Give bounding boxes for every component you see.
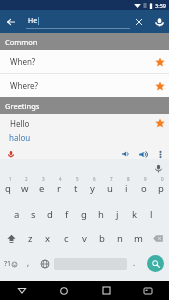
button[interactable]: 5	[67, 177, 84, 202]
button[interactable]: f	[58, 202, 75, 226]
button[interactable]: When?	[0, 50, 169, 73]
staticText: .	[133, 257, 136, 268]
button[interactable]: m	[129, 226, 147, 251]
staticText: i	[125, 182, 128, 195]
button[interactable]: d	[41, 202, 58, 226]
button[interactable]: Voice input	[149, 10, 169, 33]
button[interactable]: Clear	[129, 10, 149, 33]
button[interactable]: k	[126, 202, 143, 226]
button[interactable]: h	[92, 202, 109, 226]
staticText: 9	[144, 176, 147, 182]
staticText: f	[65, 208, 69, 221]
button[interactable]: Recent apps	[85, 281, 127, 300]
staticText: 0	[161, 176, 164, 182]
button[interactable]: Play	[135, 146, 152, 162]
staticText: g	[81, 208, 87, 221]
button[interactable]: l	[143, 202, 160, 226]
button[interactable]: a	[9, 202, 25, 226]
button[interactable]: Change language	[36, 251, 54, 276]
button[interactable]: Symbols	[0, 251, 21, 276]
button[interactable]: Play slowly	[118, 146, 135, 162]
button[interactable]: 8	[118, 177, 135, 202]
button[interactable]: Voice input	[152, 162, 165, 175]
button[interactable]: Where?	[0, 74, 169, 97]
button[interactable]: ,	[21, 251, 36, 276]
staticText: o	[141, 182, 147, 195]
button[interactable]: n	[111, 226, 129, 251]
staticText: 8	[127, 176, 130, 182]
button[interactable]: 9	[135, 177, 152, 202]
staticText: z	[28, 232, 33, 245]
button[interactable]: Space	[54, 251, 127, 276]
staticText: Where?	[10, 80, 150, 91]
button[interactable]: j	[109, 202, 126, 226]
button[interactable]: s	[25, 202, 41, 226]
staticText: n	[117, 232, 123, 245]
staticText: 3	[42, 176, 45, 182]
staticText: q	[5, 182, 11, 195]
button[interactable]: 2	[16, 177, 33, 202]
staticText: 5	[76, 176, 79, 182]
staticText: t	[74, 182, 78, 195]
staticText: w	[21, 182, 29, 195]
button[interactable]: Hello	[0, 114, 169, 132]
button[interactable]: g	[75, 202, 92, 226]
staticText: l	[150, 208, 153, 221]
staticText: halou	[9, 132, 31, 143]
button[interactable]: 4	[50, 177, 67, 202]
staticText: h	[98, 208, 104, 221]
button[interactable]: Favorite	[150, 74, 169, 97]
button[interactable]: .	[127, 251, 141, 276]
staticText: b	[99, 232, 105, 245]
staticText: m	[134, 232, 143, 245]
button[interactable]: 7	[101, 177, 118, 202]
staticText: p	[158, 182, 164, 195]
staticText: Greetings	[5, 101, 40, 111]
staticText: x	[45, 232, 51, 245]
button[interactable]: x	[39, 226, 57, 251]
button[interactable]: v	[75, 226, 93, 251]
button[interactable]: b	[93, 226, 111, 251]
staticText: e	[39, 182, 45, 195]
button[interactable]: Hide keyboard	[127, 281, 169, 300]
button[interactable]: Search	[141, 251, 169, 276]
button[interactable]: He	[26, 10, 130, 33]
button[interactable]: Backspace	[147, 226, 169, 251]
staticText: s	[31, 208, 36, 221]
staticText: y	[90, 182, 95, 195]
staticText: ?1	[4, 259, 12, 269]
staticText: c	[64, 232, 69, 245]
staticText: ,	[27, 257, 30, 268]
staticText: He	[28, 16, 38, 26]
staticText: a	[14, 208, 20, 221]
button[interactable]: Record	[0, 146, 22, 162]
button[interactable]: More options	[152, 146, 169, 162]
staticText: Common	[5, 37, 38, 47]
button[interactable]: Back	[0, 10, 21, 33]
button[interactable]: 1	[0, 177, 16, 202]
staticText: 1	[9, 176, 12, 182]
staticText: j	[116, 208, 119, 221]
staticText: r	[57, 182, 61, 195]
button[interactable]: Back	[0, 281, 43, 300]
staticText: Hello	[10, 118, 150, 129]
staticText: k	[132, 208, 138, 221]
staticText: 6	[93, 176, 96, 182]
button[interactable]: 6	[84, 177, 101, 202]
button[interactable]: Home	[43, 281, 85, 300]
button[interactable]: Shift	[0, 226, 22, 251]
staticText: 7	[110, 176, 113, 182]
staticText: d	[47, 208, 53, 221]
button[interactable]: Favorite	[150, 114, 169, 132]
button[interactable]: Favorite	[150, 50, 169, 73]
staticText: v	[82, 232, 87, 245]
button[interactable]: c	[57, 226, 75, 251]
button[interactable]: 0	[152, 177, 169, 202]
button[interactable]: z	[22, 226, 39, 251]
staticText: When?	[10, 56, 150, 67]
staticText: 4	[59, 176, 62, 182]
staticText: u	[107, 182, 113, 195]
staticText: 3:59	[155, 2, 166, 9]
button[interactable]: 3	[33, 177, 50, 202]
staticText: 2	[25, 176, 28, 182]
